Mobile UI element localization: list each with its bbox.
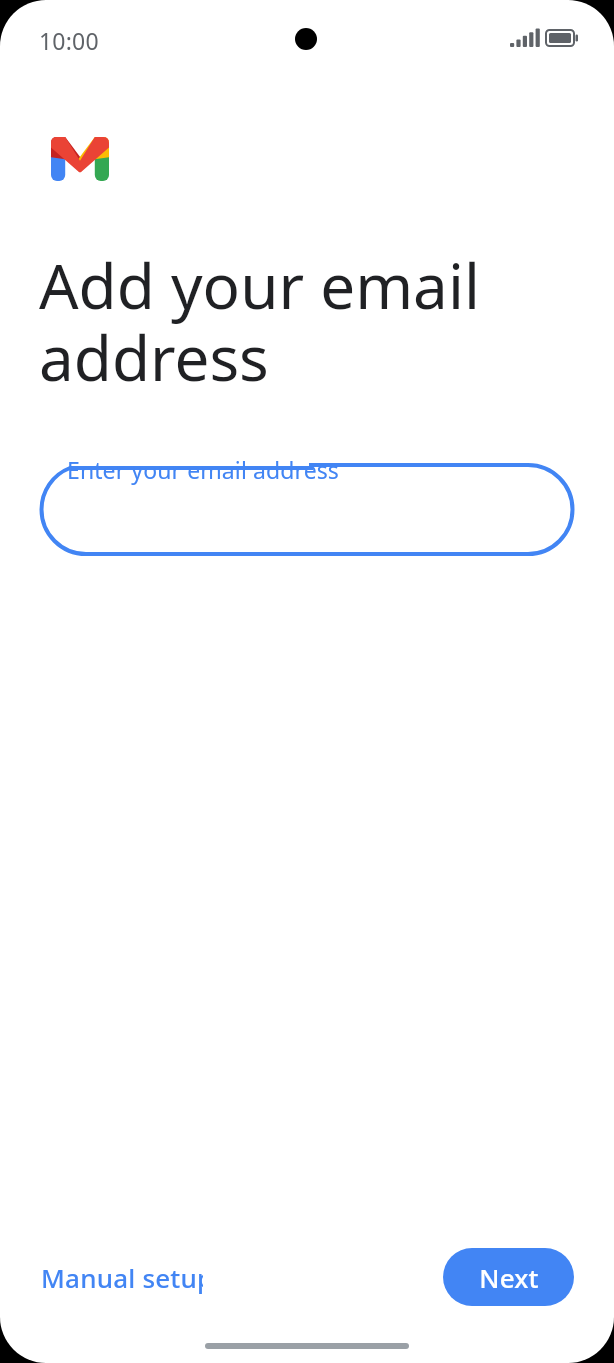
staticText: Enter your email address <box>67 454 339 485</box>
staticText: 10:00 <box>39 25 99 56</box>
button[interactable]: Manual setup <box>25 1253 203 1301</box>
staticText: Next <box>479 1260 539 1295</box>
button[interactable]: Next <box>443 1248 574 1306</box>
staticText: Manual setup <box>41 1260 203 1295</box>
staticText: Add your email address <box>39 243 480 399</box>
button[interactable]: Enter your email address <box>39 452 575 556</box>
